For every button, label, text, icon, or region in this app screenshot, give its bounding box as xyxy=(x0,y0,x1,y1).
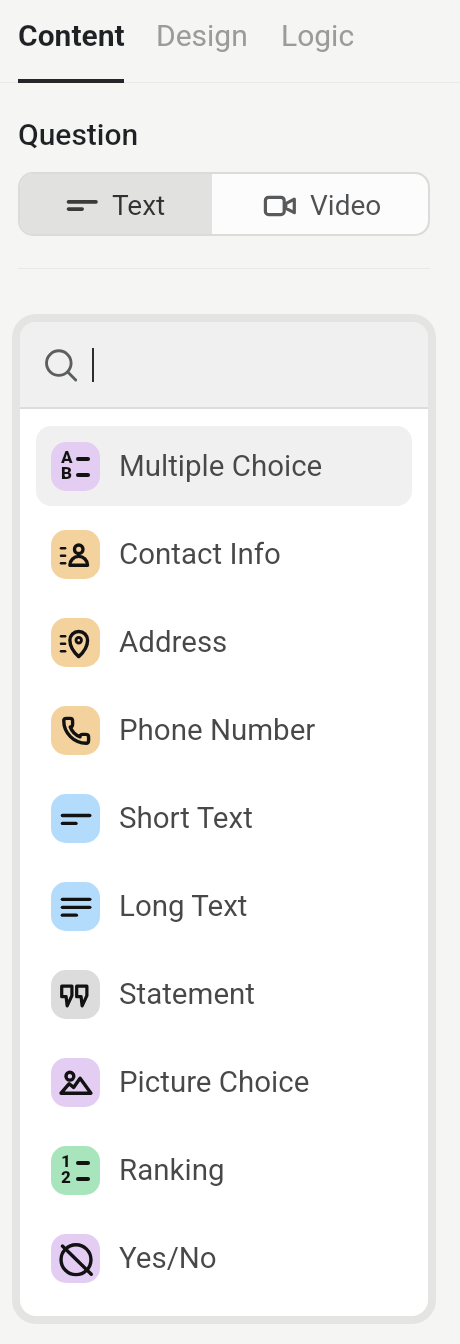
staticText: Design xyxy=(156,18,248,53)
button[interactable]: A xyxy=(36,426,412,506)
staticText: Picture Choice xyxy=(119,1065,310,1100)
button[interactable]: Long Text xyxy=(36,866,412,946)
button[interactable]: Contact Info xyxy=(36,514,412,594)
button[interactable]: Logic xyxy=(281,18,355,53)
button[interactable]: Address xyxy=(36,602,412,682)
staticText: Content xyxy=(18,18,125,53)
button[interactable]: Content xyxy=(18,18,125,53)
button[interactable]: Text xyxy=(20,174,212,234)
staticText: Address xyxy=(119,625,228,660)
button[interactable]: Statement xyxy=(36,954,412,1034)
staticText: A xyxy=(61,447,73,467)
staticText: Contact Info xyxy=(119,537,281,572)
staticText: B xyxy=(61,463,72,483)
staticText: Phone Number xyxy=(119,713,316,748)
button[interactable]: Design xyxy=(156,18,248,53)
staticText: Long Text xyxy=(119,889,248,924)
button[interactable]: Video xyxy=(212,174,428,234)
staticText: 1 xyxy=(61,1151,71,1171)
staticText: Logic xyxy=(281,18,355,53)
staticText: 2 xyxy=(61,1167,71,1187)
button[interactable]: Yes/No xyxy=(36,1218,412,1298)
staticText: Yes/No xyxy=(119,1241,217,1276)
button[interactable]: Short Text xyxy=(36,778,412,858)
staticText: Question xyxy=(18,117,139,152)
button[interactable]: 1 xyxy=(36,1130,412,1210)
staticText: Statement xyxy=(119,977,255,1012)
staticText: Ranking xyxy=(119,1153,225,1188)
button[interactable]: Picture Choice xyxy=(36,1042,412,1122)
staticText: Video xyxy=(310,189,382,222)
staticText: Short Text xyxy=(119,801,253,836)
staticText: Multiple Choice xyxy=(119,449,323,484)
staticText: Text xyxy=(112,189,166,222)
button[interactable]: Phone Number xyxy=(36,690,412,770)
